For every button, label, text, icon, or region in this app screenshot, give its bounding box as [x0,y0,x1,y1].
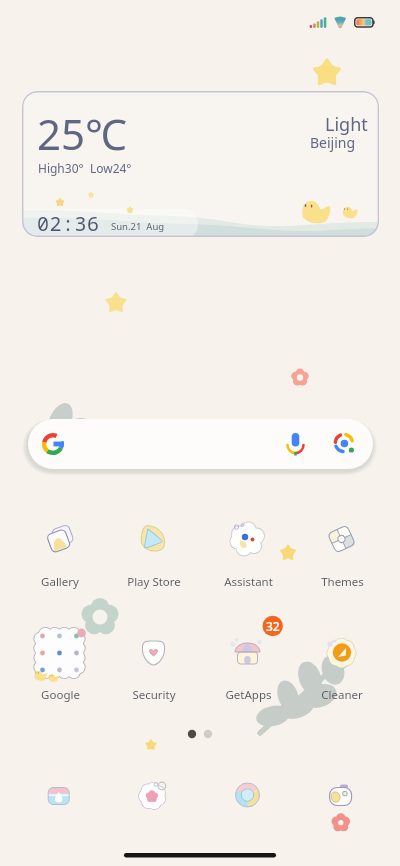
staticText: Beijing [310,133,356,152]
button[interactable]: Assistant [202,574,294,590]
button[interactable]: Google [14,687,106,703]
staticText: 25℃ [37,105,127,162]
staticText: 32 [266,618,280,634]
button[interactable]: Security [108,687,200,703]
staticText: High30° Low24° [38,160,132,176]
button[interactable]: Play Store [108,574,200,590]
button[interactable]: Search [28,419,373,469]
staticText: Google [41,687,80,703]
staticText: 02:36 [37,210,100,237]
button[interactable]: 25℃ [22,91,379,237]
staticText: Play Store [127,574,181,590]
button[interactable]: Gallery [14,574,106,590]
staticText: Themes [321,574,364,590]
staticText: GetApps [225,687,272,703]
staticText: Light [325,112,368,137]
staticText: Assistant [224,574,273,590]
button[interactable]: Cleaner [296,687,388,703]
button[interactable]: GetApps [202,687,294,703]
staticText: Sun.21 Aug [111,220,165,233]
button[interactable]: Themes [296,574,388,590]
staticText: Cleaner [321,687,363,703]
staticText: Gallery [41,574,79,590]
staticText: Security [132,687,176,703]
